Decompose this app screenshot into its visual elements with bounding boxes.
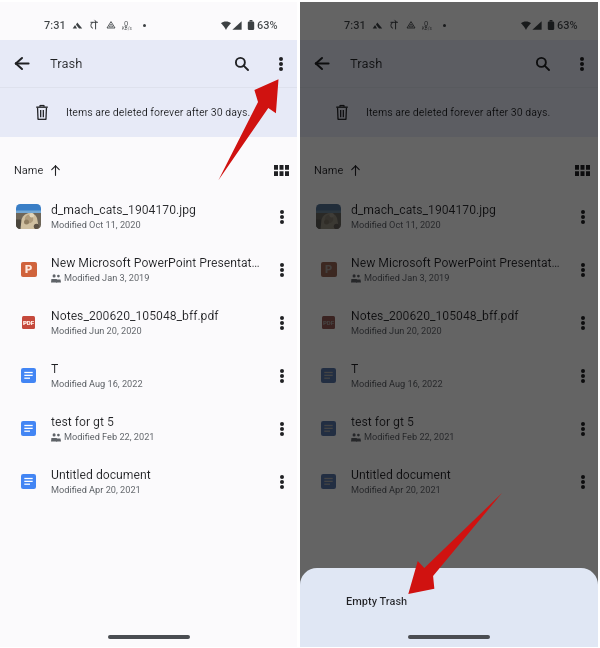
staticText: 7:31	[44, 19, 66, 32]
staticText: T	[51, 362, 59, 376]
staticText: Modified Apr 20, 2021	[351, 484, 441, 495]
button[interactable]: More options	[266, 243, 297, 296]
button[interactable]: Untitled document	[300, 455, 598, 508]
staticText: Items are deleted forever after 30 days.	[66, 106, 251, 118]
button[interactable]: Back	[0, 40, 44, 87]
staticText: P	[25, 263, 33, 276]
staticText: d_mach_cats_1904170.jpg	[51, 203, 196, 217]
button[interactable]: More options	[266, 455, 297, 508]
button[interactable]: More options	[567, 402, 598, 455]
button[interactable]: More options	[264, 40, 297, 87]
button[interactable]: More options	[567, 296, 598, 349]
button[interactable]: P	[0, 243, 297, 296]
staticText: Modified Feb 22, 2021	[64, 431, 155, 442]
button[interactable]: T	[0, 349, 297, 402]
staticText: Untitled document	[351, 468, 451, 482]
button[interactable]: Search	[521, 40, 565, 87]
staticText: Empty Trash	[346, 595, 408, 608]
staticText: P	[325, 263, 333, 276]
staticText: New Microsoft PowerPoint Presentat…	[351, 256, 560, 270]
button[interactable]: Switch to grid view	[568, 156, 596, 184]
staticText: d_mach_cats_1904170.jpg	[351, 203, 496, 217]
staticText: 63%	[257, 19, 278, 32]
staticText: Name	[314, 164, 344, 177]
button[interactable]: More options	[567, 349, 598, 402]
button[interactable]: More options	[567, 243, 598, 296]
staticText: Trash	[50, 56, 83, 71]
staticText: test for gt 5	[51, 415, 114, 429]
staticText: Modified Apr 20, 2021	[51, 484, 141, 495]
staticText: Modified Jun 20, 2020	[351, 325, 442, 336]
staticText: Untitled document	[51, 468, 151, 482]
staticText: Modified Jun 20, 2020	[51, 325, 142, 336]
staticText: 0	[424, 19, 429, 28]
staticText: Modified Feb 22, 2021	[364, 431, 455, 442]
button[interactable]: d_mach_cats_1904170.jpg	[0, 190, 297, 243]
staticText: Modified Oct 11, 2020	[51, 219, 141, 230]
button[interactable]: More options	[266, 190, 297, 243]
staticText: New Microsoft PowerPoint Presentat…	[51, 256, 260, 270]
button[interactable]: P	[300, 243, 598, 296]
staticText: 7:31	[344, 19, 366, 32]
button[interactable]: More options	[266, 402, 297, 455]
staticText: Notes_200620_105048_bff.pdf	[51, 309, 219, 323]
staticText: Name	[14, 164, 44, 177]
button[interactable]: Untitled document	[0, 455, 297, 508]
staticText: Modified Jan 3, 2019	[364, 272, 450, 283]
button[interactable]: Empty Trash	[300, 568, 598, 647]
staticText: Modified Aug 16, 2022	[351, 378, 443, 389]
staticText: Modified Jan 3, 2019	[64, 272, 150, 283]
staticText: Modified Aug 16, 2022	[51, 378, 143, 389]
staticText: Modified Oct 11, 2020	[351, 219, 441, 230]
staticText: PDF	[23, 319, 35, 326]
staticText: 63%	[557, 19, 578, 32]
staticText: T	[351, 362, 359, 376]
button[interactable]: Back	[300, 40, 344, 87]
button[interactable]: d_mach_cats_1904170.jpg	[300, 190, 598, 243]
button[interactable]: test for gt 5	[300, 402, 598, 455]
button[interactable]: More options	[567, 455, 598, 508]
button[interactable]: Name	[14, 164, 61, 177]
button[interactable]: PDF	[300, 296, 598, 349]
staticText: Notes_200620_105048_bff.pdf	[351, 309, 519, 323]
staticText: PDF	[323, 319, 335, 326]
button[interactable]: Switch to grid view	[267, 156, 295, 184]
staticText: KB/s	[122, 26, 132, 31]
button[interactable]: test for gt 5	[0, 402, 297, 455]
staticText: Trash	[350, 56, 383, 71]
button[interactable]: T	[300, 349, 598, 402]
staticText: Items are deleted forever after 30 days.	[366, 106, 551, 118]
button[interactable]: Name	[314, 164, 361, 177]
button[interactable]: More options	[567, 190, 598, 243]
staticText: KB/s	[422, 26, 432, 31]
button[interactable]: Search	[220, 40, 264, 87]
button[interactable]: PDF	[0, 296, 297, 349]
staticText: test for gt 5	[351, 415, 414, 429]
button[interactable]: More options	[266, 296, 297, 349]
button[interactable]: More options	[266, 349, 297, 402]
staticText: 0	[124, 19, 129, 28]
button[interactable]: More options	[565, 40, 598, 87]
